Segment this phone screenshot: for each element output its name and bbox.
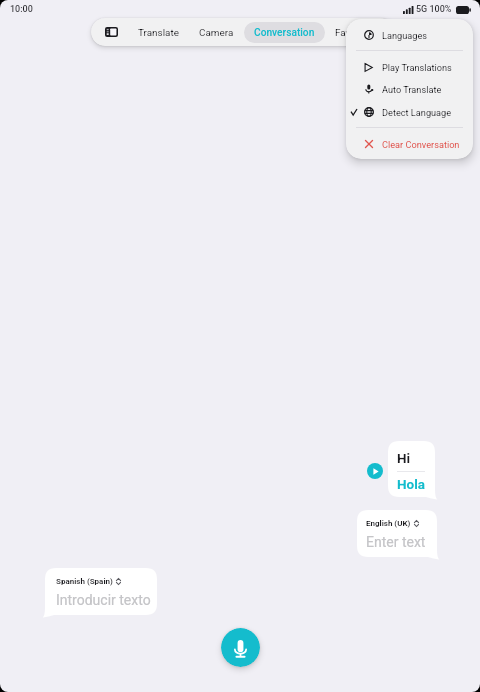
button[interactable]: Auto Translate xyxy=(346,78,473,100)
button[interactable]: Play translation xyxy=(367,463,383,479)
staticText: Introducir texto xyxy=(56,592,151,608)
button[interactable]: English (UK) xyxy=(357,510,437,557)
button[interactable]: Play Translations xyxy=(346,56,473,78)
button[interactable]: Conversation xyxy=(244,22,325,43)
button[interactable]: Clear Conversation xyxy=(346,133,473,155)
staticText: Enter text xyxy=(366,534,426,550)
staticText: Clear Conversation xyxy=(382,139,460,150)
button[interactable]: Detect Language xyxy=(346,101,473,123)
button[interactable]: Languages xyxy=(346,24,473,46)
staticText: Play Translations xyxy=(382,62,452,73)
staticText: Hi xyxy=(397,450,411,466)
staticText: Spanish (Spain) xyxy=(56,577,113,586)
button[interactable]: Camera xyxy=(189,22,244,43)
button[interactable]: Favourites xyxy=(325,22,391,43)
button[interactable]: Show sidebar xyxy=(94,18,128,46)
staticText: Hola xyxy=(397,476,425,492)
staticText: Favourites xyxy=(335,27,381,39)
button[interactable]: Translate xyxy=(128,22,189,43)
button[interactable]: Hi xyxy=(388,441,435,497)
button[interactable]: Spanish (Spain) xyxy=(45,568,157,615)
staticText: Auto Translate xyxy=(382,84,442,95)
button[interactable]: Start listening xyxy=(221,628,260,667)
staticText: Camera xyxy=(199,27,234,39)
staticText: Conversation xyxy=(254,27,315,39)
staticText: 10:00 xyxy=(10,4,33,15)
staticText: English (UK) xyxy=(366,519,411,528)
staticText: Languages xyxy=(382,30,428,41)
staticText: Detect Language xyxy=(382,107,452,118)
staticText: 5G 100% xyxy=(416,4,452,15)
staticText: Translate xyxy=(138,27,179,39)
